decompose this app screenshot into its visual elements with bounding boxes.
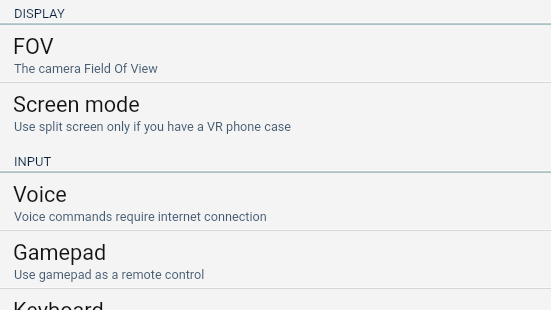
button[interactable]: FOV bbox=[0, 25, 551, 83]
button[interactable]: Screen mode bbox=[0, 83, 551, 141]
staticText: FOV bbox=[13, 34, 54, 59]
staticText: Gamepad bbox=[13, 240, 107, 265]
staticText: Voice commands require internet connecti… bbox=[14, 209, 267, 224]
staticText: INPUT bbox=[14, 154, 52, 169]
staticText: The camera Field Of View bbox=[14, 61, 158, 76]
staticText: Keyboard bbox=[13, 298, 104, 310]
staticText: Voice bbox=[13, 182, 67, 207]
button[interactable]: Gamepad bbox=[0, 231, 551, 289]
button[interactable]: Voice bbox=[0, 173, 551, 231]
staticText: Screen mode bbox=[13, 92, 140, 117]
staticText: DISPLAY bbox=[14, 6, 65, 21]
staticText: Use split screen only if you have a VR p… bbox=[14, 119, 292, 134]
button[interactable]: Keyboard bbox=[0, 289, 551, 310]
staticText: Use gamepad as a remote control bbox=[14, 267, 205, 282]
